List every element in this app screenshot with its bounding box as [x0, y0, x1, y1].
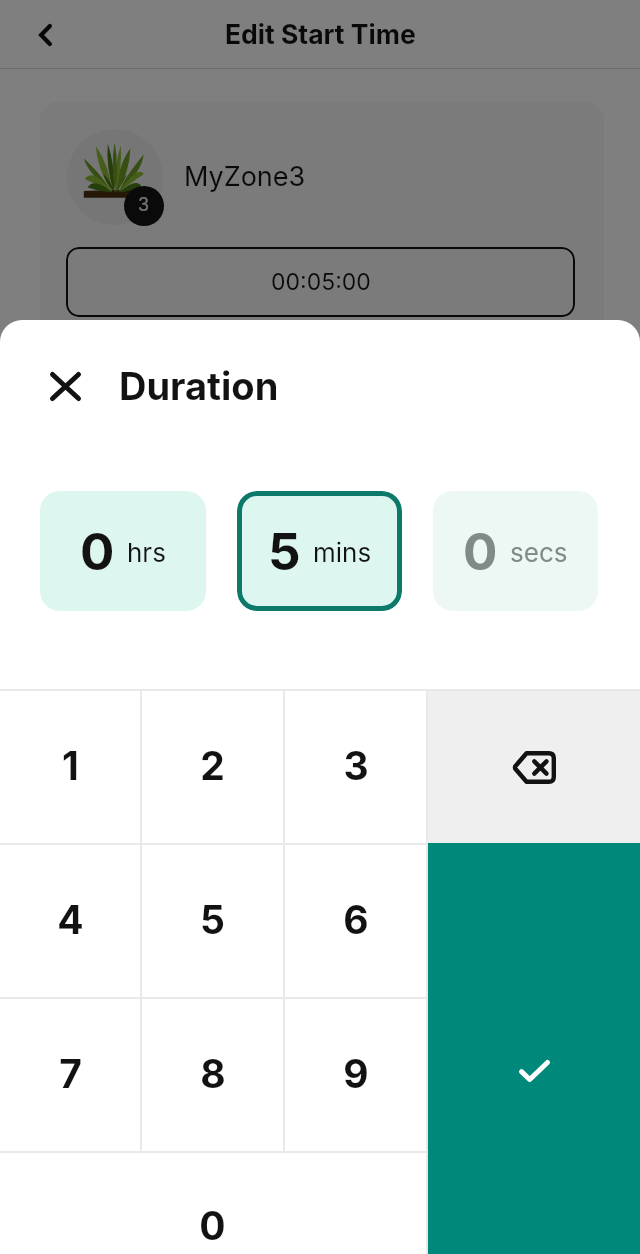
button[interactable]: Close [37, 358, 94, 415]
staticText: mins [313, 537, 372, 568]
button[interactable]: 5 [142, 845, 283, 997]
staticText: 6 [343, 896, 369, 943]
staticText: 3 [343, 742, 369, 789]
staticText: 8 [200, 1050, 226, 1097]
staticText: 4 [57, 896, 84, 943]
button[interactable]: 3 [285, 691, 426, 843]
button[interactable]: 0 [433, 491, 598, 611]
staticText: 5 [268, 521, 301, 583]
button[interactable]: Back [21, 10, 70, 59]
button[interactable]: 00:05:00 [66, 247, 575, 317]
staticText: MyZone3 [184, 160, 306, 193]
button[interactable]: 7 [0, 999, 140, 1151]
staticText: 1 [62, 742, 79, 789]
staticText: 0 [80, 521, 115, 583]
staticText: hrs [127, 537, 166, 568]
staticText: 7 [59, 1050, 82, 1097]
staticText: 0 [463, 521, 498, 583]
button[interactable]: 1 [0, 691, 140, 843]
staticText: 2 [200, 742, 225, 789]
staticText: secs [510, 537, 568, 568]
button[interactable]: 9 [285, 999, 426, 1151]
staticText: 00:05:00 [271, 268, 371, 296]
button[interactable]: Confirm [428, 843, 640, 1254]
staticText: 0 [199, 1202, 226, 1249]
button[interactable]: Backspace [428, 691, 640, 843]
staticText: 3 [138, 194, 150, 216]
staticText: Duration [119, 363, 279, 409]
button[interactable]: 0 [142, 1153, 283, 1254]
button[interactable]: 4 [0, 845, 140, 997]
staticText: 5 [200, 896, 225, 943]
button[interactable]: 2 [142, 691, 283, 843]
button[interactable]: 8 [142, 999, 283, 1151]
staticText: 9 [343, 1050, 369, 1097]
button[interactable]: 5 [237, 491, 402, 611]
button[interactable]: 0 [40, 491, 206, 611]
button[interactable]: 6 [285, 845, 426, 997]
staticText: Edit Start Time [225, 18, 416, 50]
